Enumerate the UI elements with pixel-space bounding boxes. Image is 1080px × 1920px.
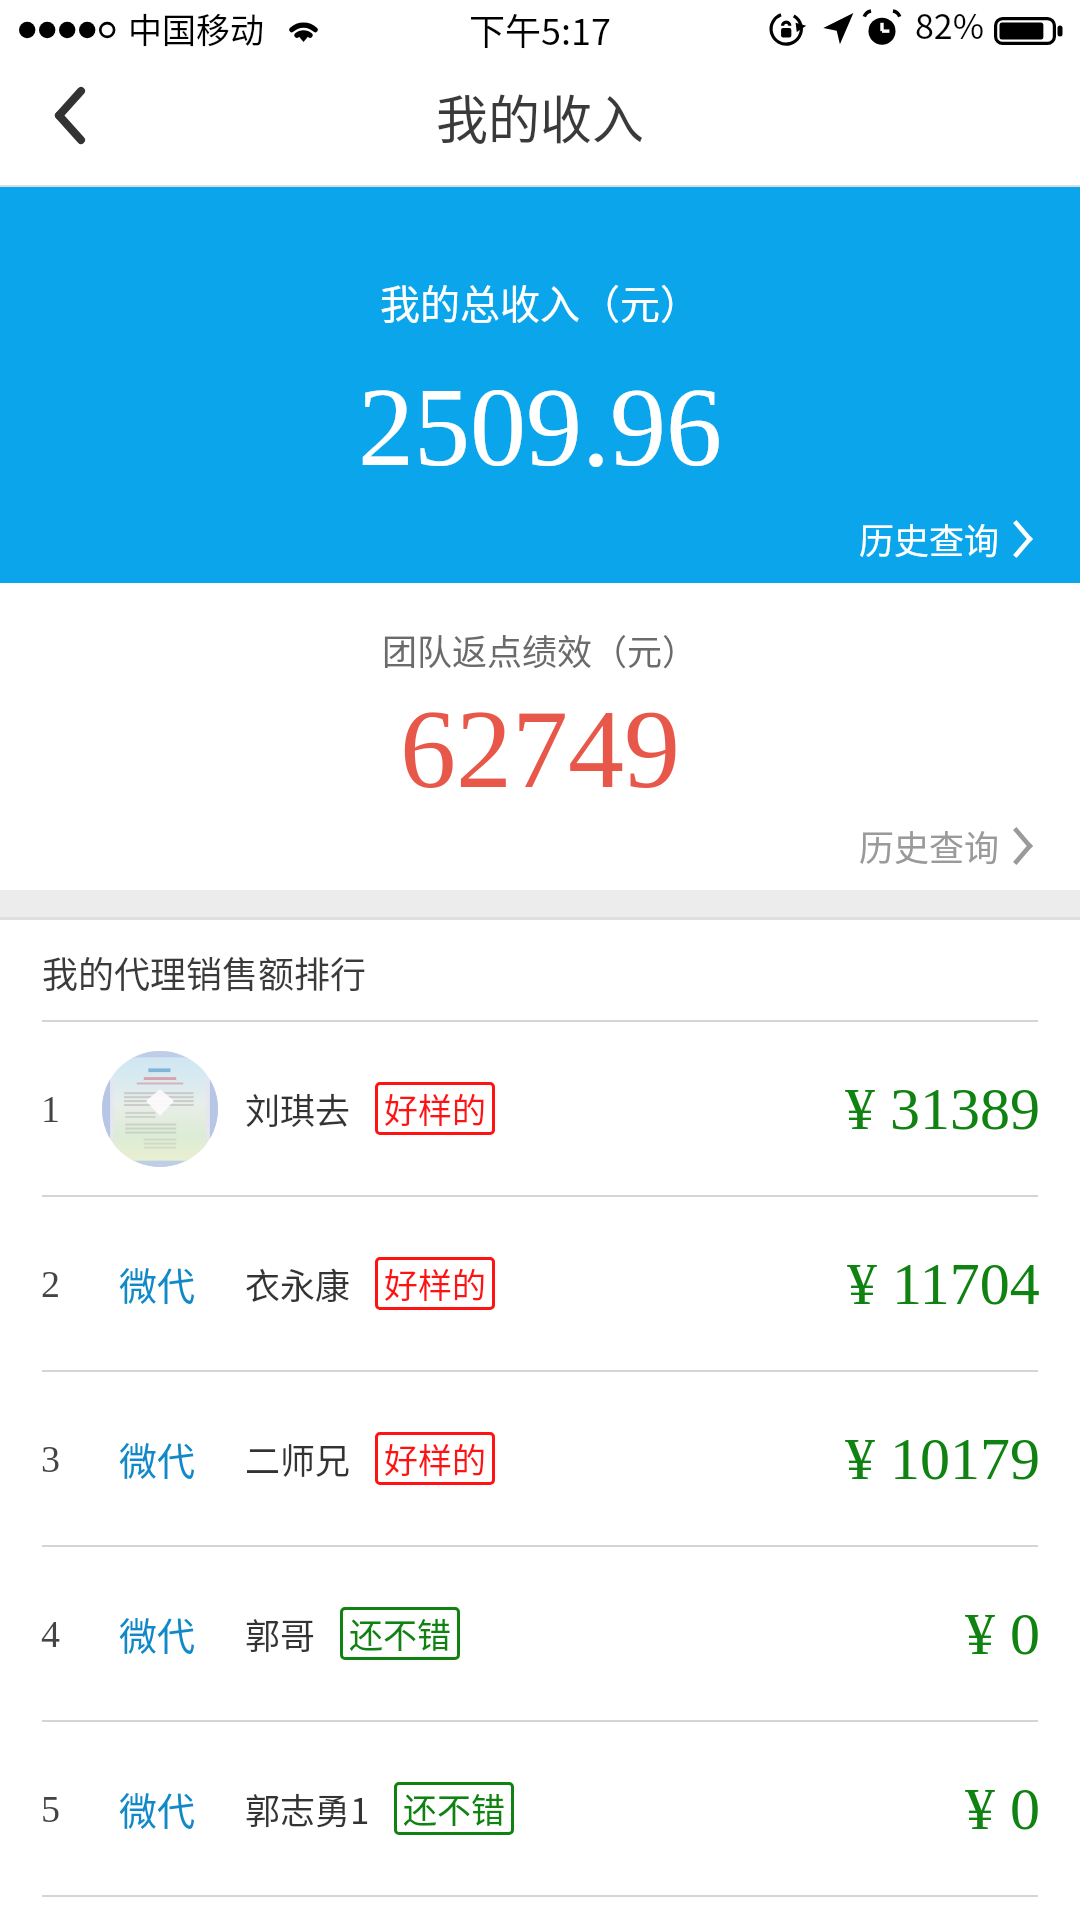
button[interactable]: 1 [0,1022,1080,1195]
staticText: 微代 [119,1431,196,1486]
staticText: 我的收入 [436,79,645,154]
staticText: ¥ 31389 [845,1076,1040,1142]
staticText: 团队返点绩效（元） [382,624,698,675]
staticText: 62749 [400,687,680,811]
staticText: 1 [41,1088,60,1130]
staticText: ¥ 0 [965,1776,1040,1842]
staticText: 中国移动 [128,4,264,53]
staticText: 我的代理销售额排行 [42,946,367,998]
button[interactable]: 历史查询 [851,812,1040,879]
staticText: 4 [41,1613,60,1655]
staticText: 5 [41,1788,60,1830]
staticText: 还不错 [403,1784,505,1833]
staticText: 好样的 [384,1434,486,1483]
staticText: 微代 [119,1256,196,1311]
staticText: 3 [41,1438,60,1480]
staticText: 衣永康 [245,1258,351,1309]
staticText: 好样的 [384,1259,486,1308]
staticText: ¥ 11704 [847,1251,1040,1317]
staticText: 还不错 [349,1609,451,1658]
staticText: 刘琪去 [245,1083,351,1134]
staticText: 历史查询 [859,820,1000,871]
staticText: 微代 [119,1606,196,1661]
staticText: 82% [915,0,985,49]
staticText: 历史查询 [859,513,1000,564]
button[interactable]: 4 [0,1547,1080,1720]
staticText: 微代 [119,1781,196,1836]
staticText: 好样的 [384,1084,486,1133]
staticText: 我的总收入（元） [380,273,700,331]
staticText: 郭哥 [245,1608,316,1659]
button[interactable]: 3 [0,1372,1080,1545]
button[interactable]: 历史查询 [851,505,1040,572]
button[interactable]: 5 [0,1722,1080,1895]
staticText: ¥ 0 [965,1601,1040,1667]
button[interactable]: 2 [0,1197,1080,1370]
button[interactable]: Back [0,64,120,187]
staticText: 2 [41,1263,60,1305]
staticText: 二师兄 [245,1433,351,1484]
staticText: ¥ 10179 [845,1426,1040,1492]
staticText: 郭志勇1 [245,1783,370,1834]
staticText: 下午5:17 [469,3,611,55]
staticText: 2509.96 [358,365,722,489]
